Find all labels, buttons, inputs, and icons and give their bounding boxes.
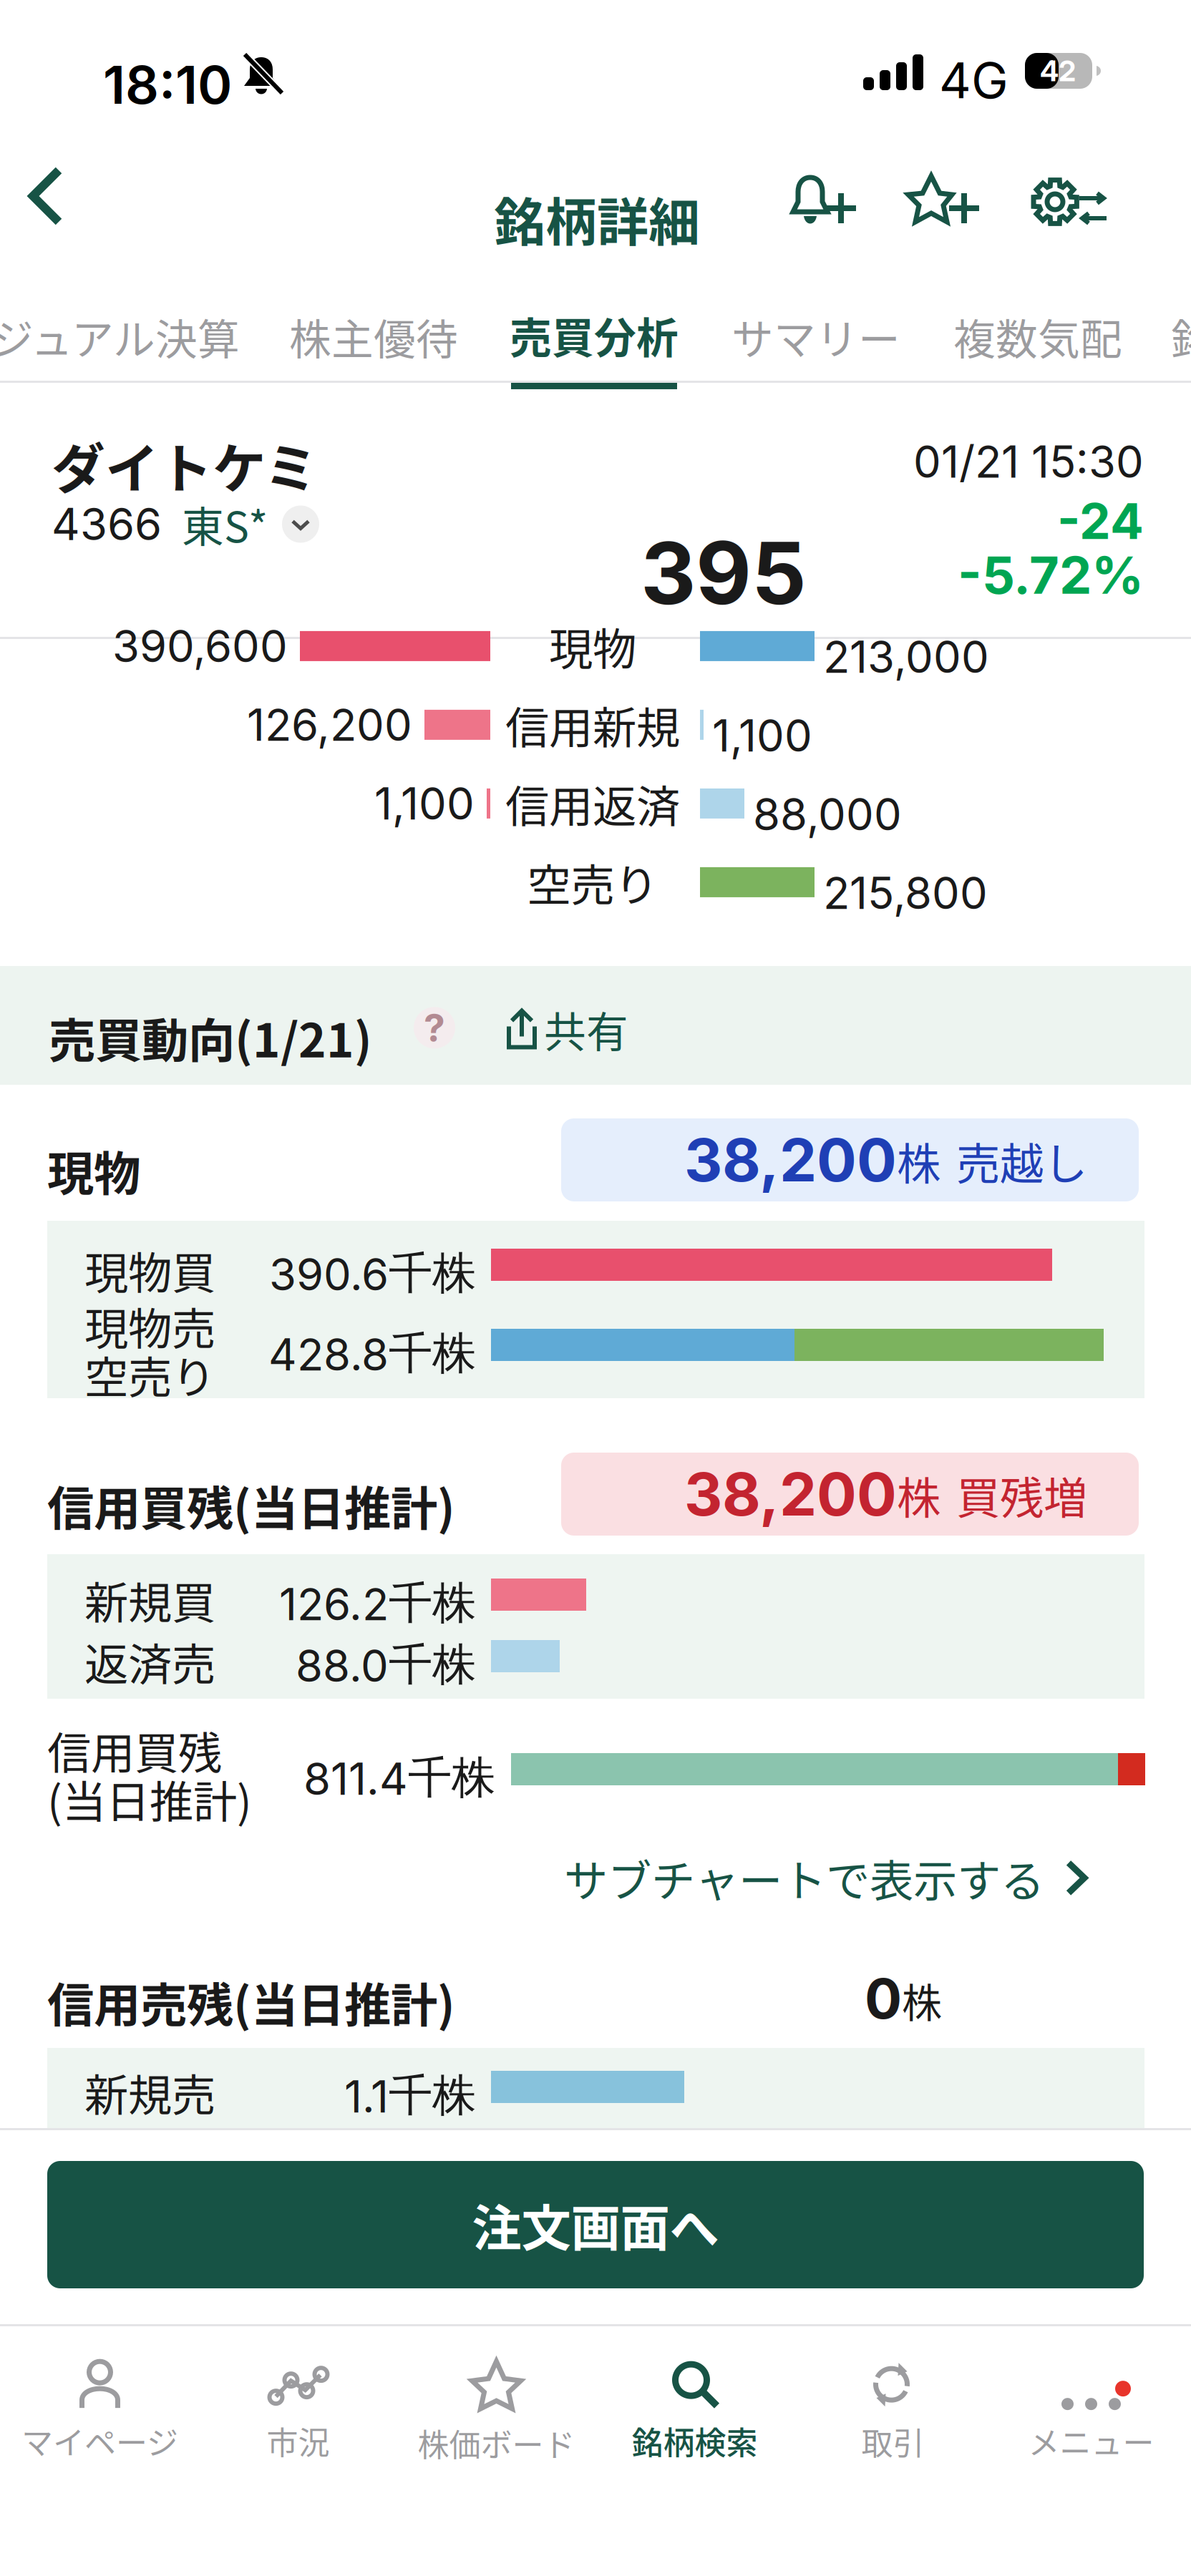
staticText: 東S* (182, 494, 268, 555)
staticText: 42 (1040, 54, 1076, 88)
staticText: 新規売 (84, 2061, 215, 2124)
staticText: 信用新規 (505, 693, 680, 757)
staticText: 88,000 (753, 788, 902, 841)
button[interactable]: メニュー (992, 2347, 1190, 2476)
staticText: ? (424, 1005, 445, 1051)
staticText: 現物 (47, 1136, 140, 1204)
staticText: 複数気配 (953, 306, 1122, 367)
staticText: (当日推計) (47, 1767, 252, 1831)
staticText: 信用返済 (505, 772, 680, 835)
staticText: 215,800 (823, 866, 988, 920)
staticText: 213,000 (823, 630, 989, 683)
button[interactable]: 設定 (1028, 169, 1108, 238)
staticText: 126,200 (247, 698, 412, 751)
staticText: 現物売 (84, 1294, 215, 1358)
button[interactable]: アラート追加 (790, 169, 860, 238)
staticText: 株 (897, 1129, 940, 1193)
staticText: マイページ (21, 2418, 178, 2464)
staticText: メニュー (1028, 2418, 1154, 2464)
button[interactable]: 銘柄検索 (595, 2347, 794, 2476)
staticText: 空売り (527, 850, 658, 914)
button[interactable]: サブチャートで表示する (564, 1846, 1089, 1910)
staticText: 現物買 (84, 1238, 215, 1302)
staticText: 買残増 (956, 1463, 1087, 1527)
staticText: 428.8千株 (268, 1326, 476, 1381)
button[interactable]: 戻る (14, 155, 77, 238)
staticText: 38,200 (684, 1458, 897, 1530)
staticText: 4G (939, 50, 1008, 110)
staticText: 4366 (52, 498, 162, 551)
staticText: 市況 (267, 2418, 330, 2464)
staticText: 銘柄検索 (632, 2418, 758, 2464)
staticText: 株 (897, 1463, 940, 1527)
button[interactable]: ヘルプ (414, 1005, 455, 1051)
staticText: 1,100 (712, 709, 812, 762)
staticText: 信用買残(当日推計) (47, 1471, 455, 1539)
button[interactable]: 注文画面へ (47, 2161, 1144, 2288)
staticText: 1.1千株 (344, 2068, 476, 2123)
staticText: 811.4千株 (303, 1750, 495, 1806)
button[interactable]: 共有 (505, 999, 628, 1060)
staticText: 株主優待 (289, 306, 458, 367)
button[interactable]: マイページ (1, 2347, 199, 2476)
staticText: 395 (641, 521, 807, 625)
staticText: 現物 (549, 614, 636, 678)
staticText: 信用買残 (47, 1718, 222, 1782)
staticText: 返済売 (84, 1630, 215, 1693)
button[interactable]: サマリー (731, 306, 900, 367)
button[interactable]: 取引 (794, 2347, 992, 2476)
staticText: 空売り (84, 1343, 215, 1406)
staticText: 共有 (544, 999, 628, 1060)
button[interactable]: 複数気配 (953, 306, 1122, 367)
staticText: 信用売残(当日推計) (47, 1968, 455, 2035)
staticText: 01/21 15:30 (913, 435, 1144, 488)
staticText: 注文画面へ (472, 2189, 719, 2261)
staticText: ジュアル決算 (0, 306, 240, 367)
staticText: 新規買 (84, 1568, 215, 1632)
button[interactable]: お気に入り追加 (908, 169, 986, 238)
staticText: -5.72% (958, 544, 1144, 606)
button[interactable]: 売買分析 (510, 305, 679, 389)
staticText: 銘柄詳細 (494, 181, 700, 256)
staticText: 390.6千株 (269, 1246, 476, 1301)
staticText: 38,200 (684, 1124, 897, 1196)
staticText: 18:10 (103, 53, 232, 116)
staticText: 売越し (956, 1129, 1087, 1193)
staticText: 126.2千株 (279, 1576, 476, 1631)
button[interactable]: 株価ボード (397, 2347, 595, 2476)
staticText: 株 (902, 1971, 942, 2029)
staticText: -24 (1057, 491, 1144, 551)
staticText: サマリー (731, 306, 900, 367)
staticText: 0 (865, 1965, 902, 2032)
button[interactable]: 株主優待 (289, 306, 458, 367)
staticText: 売買動向(1/21) (49, 1003, 372, 1071)
staticText: 取引 (861, 2419, 924, 2464)
staticText: 銘 (1171, 306, 1191, 367)
staticText: ダイトケミ (52, 426, 318, 504)
staticText: 88.0千株 (296, 1637, 476, 1693)
staticText: 1,100 (374, 777, 475, 830)
staticText: 390,600 (112, 620, 288, 673)
button[interactable]: 市況 (199, 2347, 397, 2476)
staticText: 株価ボード (418, 2420, 575, 2466)
staticText: サブチャートで表示する (564, 1846, 1044, 1910)
staticText: 売買分析 (510, 305, 679, 366)
